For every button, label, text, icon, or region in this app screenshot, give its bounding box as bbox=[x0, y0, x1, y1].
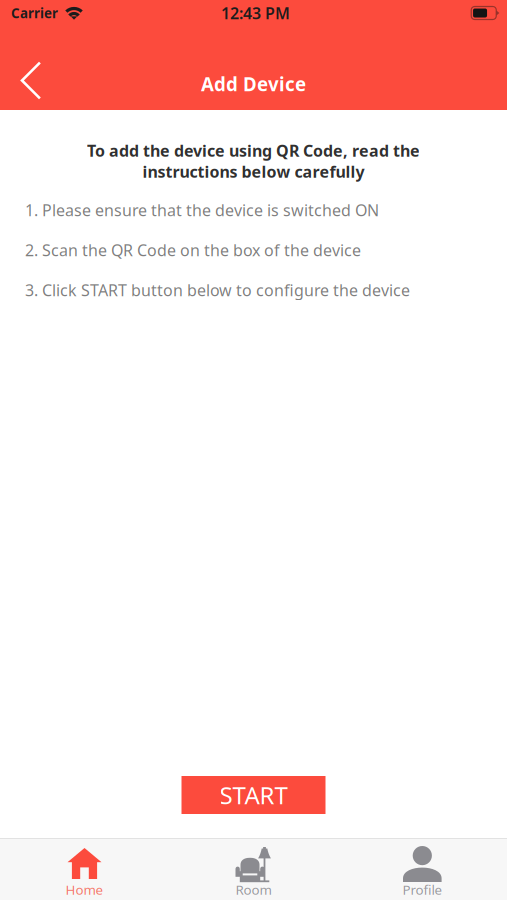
staticText: Profile bbox=[402, 881, 442, 898]
button[interactable]: Profile bbox=[338, 845, 507, 900]
staticText: Home bbox=[65, 881, 103, 898]
staticText: 2. Scan the QR Code on the box of the de… bbox=[25, 239, 361, 261]
staticText: 12:43 PM bbox=[221, 2, 290, 24]
staticText: Carrier bbox=[11, 4, 58, 22]
staticText: 3. Click START button below to configure… bbox=[25, 279, 410, 301]
button[interactable]: Home bbox=[0, 845, 169, 900]
staticText: To add the device using QR Code, read th… bbox=[87, 140, 420, 161]
staticText: Add Device bbox=[201, 72, 306, 96]
staticText: instructions below carefully bbox=[142, 161, 364, 182]
staticText: Room bbox=[235, 881, 271, 898]
button[interactable]: START bbox=[181, 776, 325, 814]
staticText: START bbox=[219, 779, 287, 811]
button[interactable]: Room bbox=[169, 845, 338, 900]
staticText: 1. Please ensure that the device is swit… bbox=[25, 199, 379, 221]
button[interactable]: Back bbox=[0, 26, 55, 110]
